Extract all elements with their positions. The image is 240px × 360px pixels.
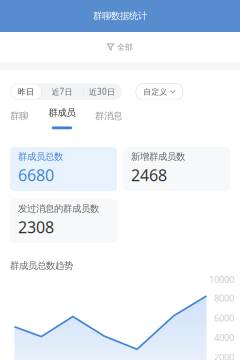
button[interactable]: 自定义 bbox=[136, 83, 183, 100]
staticText: 6000 bbox=[214, 312, 234, 324]
staticText: 2000 bbox=[214, 351, 234, 360]
staticText: 群成员 bbox=[48, 107, 75, 118]
staticText: 群成员总数趋势 bbox=[10, 260, 73, 271]
staticText: 2468 bbox=[131, 164, 167, 186]
staticText: 发过消息的群成员数 bbox=[18, 203, 99, 214]
button[interactable]: 群消息 bbox=[95, 101, 123, 131]
button[interactable]: 昨日 bbox=[11, 84, 41, 99]
staticText: 群消息 bbox=[95, 110, 122, 122]
staticText: 近30日 bbox=[89, 86, 115, 97]
button[interactable]: 群聊 bbox=[10, 101, 29, 131]
staticText: 群聊 bbox=[10, 110, 28, 122]
button[interactable]: 全部 bbox=[0, 32, 240, 62]
button[interactable]: 近30日 bbox=[83, 84, 121, 99]
staticText: 10000 bbox=[209, 273, 234, 285]
staticText: 自定义 bbox=[143, 87, 167, 97]
staticText: 4000 bbox=[214, 331, 234, 344]
staticText: 昨日 bbox=[18, 87, 34, 97]
staticText: 全部 bbox=[117, 42, 133, 52]
button[interactable]: 群成员 bbox=[48, 100, 76, 132]
staticText: 6680 bbox=[18, 164, 54, 186]
staticText: 近7日 bbox=[51, 86, 72, 97]
button[interactable]: 近7日 bbox=[41, 84, 83, 99]
staticText: 群聊数据统计 bbox=[93, 10, 147, 22]
staticText: 2308 bbox=[18, 216, 54, 238]
staticText: 新增群成员数 bbox=[131, 151, 185, 162]
staticText: 群成员总数 bbox=[18, 151, 63, 162]
staticText: 8000 bbox=[214, 292, 234, 304]
